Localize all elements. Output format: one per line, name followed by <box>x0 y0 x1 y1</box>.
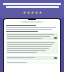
button[interactable]: Send <box>6 33 58 40</box>
button[interactable]: Send <box>54 37 57 39</box>
button[interactable]: Five star rating <box>23 11 42 14</box>
button[interactable] <box>6 61 58 64</box>
button[interactable]: Send <box>54 57 57 59</box>
button[interactable] <box>6 41 58 54</box>
button[interactable]: Send <box>6 56 58 60</box>
